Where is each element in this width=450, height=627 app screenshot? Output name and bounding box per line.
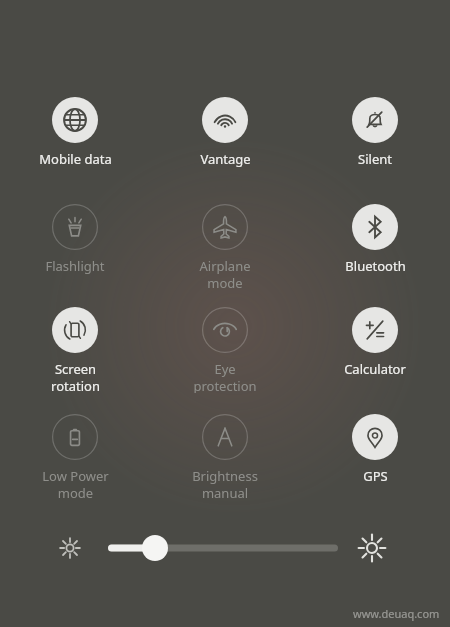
staticText: Eye protection [193, 360, 257, 393]
staticText: www.deuaq.com [353, 606, 440, 621]
staticText: Mobile data [39, 150, 112, 168]
button[interactable]: Brightness [0, 522, 450, 574]
button[interactable]: Screen rotation [20, 307, 130, 393]
button[interactable]: Eye protection [170, 307, 280, 393]
button[interactable]: Vantage [170, 97, 280, 168]
staticText: Bluetooth [345, 257, 406, 275]
staticText: Calculator [344, 360, 406, 378]
staticText: Screen rotation [51, 360, 100, 393]
staticText: Low Power mode [42, 467, 109, 500]
button[interactable]: Flashlight [20, 204, 130, 275]
staticText: Vantage [200, 150, 251, 168]
staticText: GPS [363, 467, 388, 485]
button[interactable]: Bluetooth [320, 204, 430, 275]
button[interactable]: Low Power mode [20, 414, 130, 500]
staticText: Flashlight [45, 257, 105, 275]
staticText: Brightness manual [192, 467, 258, 500]
button[interactable]: Silent [320, 97, 430, 168]
button[interactable]: Mobile data [20, 97, 130, 168]
button[interactable]: Airplane mode [170, 204, 280, 290]
button[interactable]: Brightness manual [170, 414, 280, 500]
staticText: Silent [358, 150, 392, 168]
button[interactable]: Calculator [320, 307, 430, 378]
button[interactable]: GPS [320, 414, 430, 485]
staticText: Airplane mode [199, 257, 251, 290]
